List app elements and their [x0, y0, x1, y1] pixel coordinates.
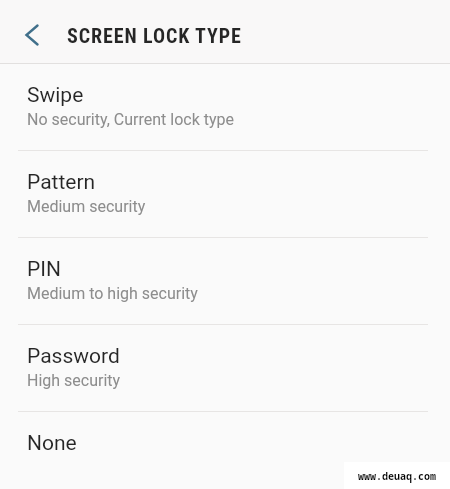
staticText: PIN: [27, 257, 61, 282]
staticText: No security, Current lock type: [27, 110, 235, 129]
button[interactable]: PIN: [0, 238, 450, 324]
button[interactable]: [0, 7, 56, 63]
staticText: Password: [27, 344, 120, 369]
staticText: www.deuaq.com: [358, 469, 436, 483]
staticText: Medium to high security: [27, 284, 198, 303]
button[interactable]: Swipe: [0, 64, 450, 150]
staticText: SCREEN LOCK TYPE: [67, 24, 242, 47]
button[interactable]: None: [0, 412, 450, 489]
staticText: High security: [27, 371, 121, 390]
staticText: Swipe: [27, 83, 84, 108]
staticText: Pattern: [27, 170, 96, 195]
staticText: Medium security: [27, 197, 146, 216]
button[interactable]: Password: [0, 325, 450, 411]
button[interactable]: Pattern: [0, 151, 450, 237]
staticText: None: [27, 431, 77, 456]
